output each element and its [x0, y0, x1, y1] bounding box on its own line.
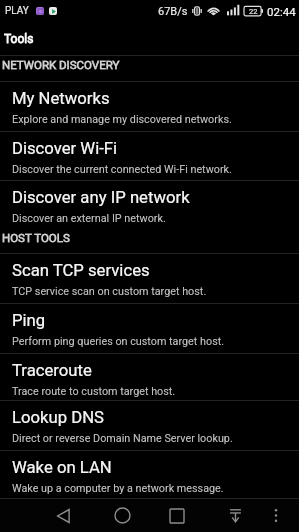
button[interactable]: Lookup DNS [0, 401, 299, 451]
button[interactable]: Recent apps [155, 499, 199, 532]
staticText: PLAY [5, 5, 29, 17]
staticText: Perform ping queries on custom target ho… [12, 335, 225, 348]
staticText: Explore and manage my discovered network… [12, 113, 232, 126]
staticText: Scan TCP services [12, 261, 150, 281]
staticText: Wake up a computer by a network message. [12, 482, 224, 495]
button[interactable]: My Networks [0, 82, 299, 132]
staticText: Traceroute [12, 361, 92, 381]
button[interactable]: Scan TCP services [0, 254, 299, 304]
button[interactable]: Back [42, 499, 86, 532]
staticText: Discover an external IP network. [12, 212, 166, 225]
button[interactable]: Traceroute [0, 354, 299, 401]
staticText: TCP service scan on custom target host. [12, 285, 207, 298]
button[interactable]: Wake on LAN [0, 451, 299, 499]
button[interactable]: Home [100, 499, 144, 532]
staticText: Trace route to custom target host. [12, 385, 176, 398]
button[interactable]: Discover Wi-Fi [0, 132, 299, 181]
staticText: Discover Wi-Fi [12, 139, 118, 159]
staticText: 22 [249, 7, 258, 16]
button[interactable]: Hide navigation bar [213, 499, 257, 532]
staticText: Discover the current connected Wi-Fi net… [12, 163, 232, 176]
staticText: HOST TOOLS [2, 231, 70, 244]
button[interactable]: More options [254, 499, 298, 532]
staticText: Ping [12, 311, 46, 331]
staticText: My Networks [12, 89, 110, 109]
staticText: Lookup DNS [12, 408, 104, 428]
staticText: Tools [4, 32, 34, 46]
staticText: NETWORK DISCOVERY [2, 58, 120, 71]
staticText: 67B/s [158, 5, 188, 18]
staticText: Discover any IP network [12, 188, 190, 208]
button[interactable]: Discover any IP network [0, 181, 299, 231]
staticText: 02:44 [267, 5, 296, 18]
staticText: Direct or reverse Domain Name Server loo… [12, 432, 233, 445]
button[interactable]: Ping [0, 304, 299, 354]
staticText: Wake on LAN [12, 458, 112, 478]
